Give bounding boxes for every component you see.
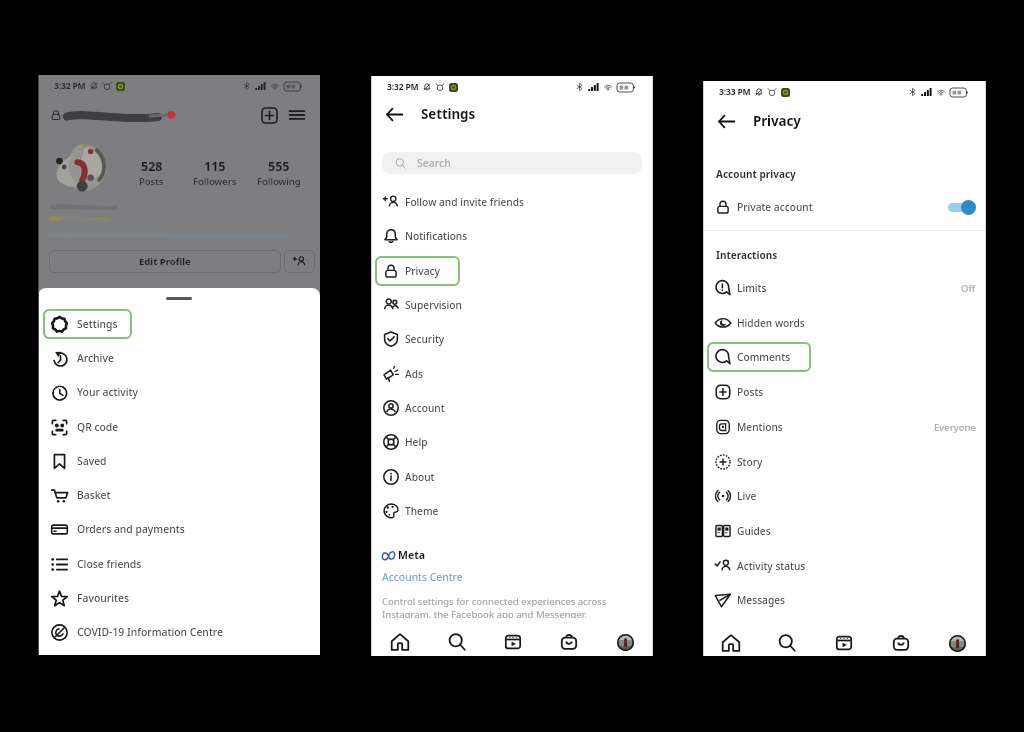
staticText: Privacy	[753, 112, 801, 130]
staticText: Archive	[77, 351, 114, 365]
staticText: Follow and invite friends	[405, 195, 525, 209]
staticText: Story	[737, 455, 763, 469]
staticText: COVID-19 Information Centre	[77, 625, 224, 639]
staticText: 3:32 PM	[54, 80, 86, 92]
button[interactable]: Ads	[371, 357, 653, 391]
staticText: Favourites	[77, 591, 129, 605]
button[interactable]: Help	[371, 425, 653, 459]
button[interactable]: Orders and payments	[38, 512, 320, 546]
button[interactable]: QR code	[38, 410, 320, 444]
staticText: Activity status	[737, 559, 806, 573]
button[interactable]: Search	[428, 623, 485, 661]
staticText: Accounts Centre	[382, 570, 463, 584]
button[interactable]: Live	[703, 479, 976, 513]
staticText: Account privacy	[716, 167, 796, 181]
staticText: Settings	[77, 317, 118, 331]
staticText: Off	[961, 282, 976, 295]
button[interactable]: Story	[703, 445, 976, 479]
button[interactable]: Archive	[38, 341, 320, 375]
button[interactable]: Account	[371, 391, 653, 425]
staticText: Mentions	[737, 420, 783, 434]
button[interactable]: Back	[382, 102, 406, 126]
staticText: Theme	[405, 504, 439, 518]
staticText: Hidden words	[737, 316, 805, 330]
button[interactable]: Posts	[703, 375, 976, 409]
button[interactable]: Guides	[703, 514, 976, 548]
staticText: 3:33 PM	[719, 86, 751, 98]
button[interactable]: Private account	[715, 195, 976, 219]
staticText: Your activity	[77, 385, 139, 399]
button[interactable]: Hidden words	[703, 306, 976, 340]
button[interactable]: Theme	[371, 494, 653, 528]
staticText: Posts	[737, 385, 764, 399]
button[interactable]: Saved	[38, 444, 320, 478]
staticText: About	[405, 470, 435, 484]
button[interactable]: Reels	[815, 624, 872, 662]
button[interactable]: Activity status	[703, 549, 976, 583]
button[interactable]: Limits	[703, 271, 976, 305]
button[interactable]: Home	[371, 623, 428, 661]
button[interactable]: Close friends	[38, 547, 320, 581]
staticText: Limits	[737, 281, 767, 295]
button[interactable]: Profile	[929, 624, 986, 662]
staticText: Help	[405, 435, 428, 449]
staticText: Orders and payments	[77, 522, 185, 536]
button[interactable]: Menu	[288, 106, 305, 123]
staticText: Privacy	[405, 264, 440, 278]
staticText: Notifications	[405, 229, 468, 243]
staticText: Edit Profile	[139, 255, 191, 268]
button[interactable]: Reels	[485, 623, 541, 661]
staticText: Basket	[77, 488, 111, 502]
staticText: Supervision	[405, 298, 462, 312]
button[interactable]: COVID-19 Information Centre	[38, 615, 320, 649]
button[interactable]: Favourites	[38, 581, 320, 615]
staticText: 528	[141, 158, 163, 175]
staticText: Following	[257, 175, 301, 188]
button[interactable]: Shop	[872, 624, 929, 662]
staticText: Meta	[398, 548, 426, 562]
staticText: Interactions	[716, 248, 778, 262]
button[interactable]: Supervision	[371, 288, 653, 322]
staticText: 115	[204, 158, 226, 175]
staticText: Posts	[139, 175, 164, 188]
staticText: Everyone	[934, 421, 976, 434]
button[interactable]: Messages	[703, 583, 976, 617]
staticText: Settings	[421, 105, 476, 123]
button[interactable]: Settings	[38, 307, 320, 341]
button[interactable]: Privacy	[371, 254, 653, 288]
button[interactable]: Basket	[38, 478, 320, 512]
button[interactable]: Comments	[703, 340, 976, 374]
button[interactable]: Accounts Centre	[382, 570, 463, 584]
staticText: 3:32 PM	[387, 81, 419, 93]
button[interactable]: Back	[714, 109, 738, 133]
button[interactable]: Home	[703, 624, 759, 662]
staticText: Security	[405, 332, 445, 346]
button[interactable]: Follow and invite friends	[371, 185, 653, 219]
button[interactable]: Mentions	[703, 410, 976, 444]
button[interactable]: Your activity	[38, 375, 320, 409]
button[interactable]: Edit Profile	[49, 250, 281, 273]
staticText: Close friends	[77, 557, 142, 571]
staticText: Messages	[737, 593, 786, 607]
staticText: QR code	[77, 420, 119, 434]
button[interactable]: Security	[371, 322, 653, 356]
button[interactable]: Shop	[541, 623, 597, 661]
staticText: Ads	[405, 367, 423, 381]
staticText: Live	[737, 489, 757, 503]
staticText: Private account	[737, 200, 813, 214]
staticText: Account	[405, 401, 445, 415]
staticText: Guides	[737, 524, 771, 538]
staticText: Comments	[737, 350, 791, 364]
button[interactable]: About	[371, 460, 653, 494]
staticText: Control settings for connected experienc…	[382, 595, 614, 634]
staticText: Search	[417, 156, 451, 170]
button[interactable]: Search	[382, 152, 642, 174]
staticText: Saved	[77, 454, 107, 468]
button[interactable]: Notifications	[371, 219, 653, 253]
button[interactable]: Search	[759, 624, 815, 662]
button[interactable]: Profile	[597, 623, 653, 661]
staticText: 555	[268, 158, 290, 175]
button[interactable]: Discover people	[284, 250, 315, 273]
staticText: Followers	[193, 175, 237, 188]
button[interactable]: New post	[259, 105, 279, 125]
